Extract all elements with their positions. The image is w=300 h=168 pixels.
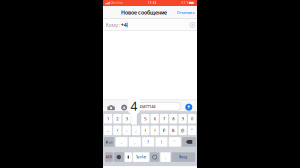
staticText: / [117,128,118,133]
staticText: 2 [116,116,118,121]
staticText: 63 % [181,1,188,5]
button[interactable]: 8 [169,114,177,123]
staticText: 0 [191,116,193,121]
button[interactable]: ₽ [160,125,168,135]
button[interactable]: Dictate [125,152,132,162]
button[interactable]: . [116,137,128,147]
staticText: 7 [163,116,165,121]
staticText: 6 [154,116,156,121]
staticText: 3 [126,116,128,121]
button[interactable]: Send [185,104,192,111]
staticText: ₽ [163,128,165,133]
button[interactable]: @ [178,125,187,135]
staticText: Кому: [105,21,119,29]
staticText: Ввод [179,155,187,159]
button[interactable]: Add contact [190,22,195,27]
button[interactable]: . [160,152,170,162]
button[interactable]: 1 [104,114,112,123]
staticText: ) [154,128,155,133]
button[interactable]: 3 [123,114,131,123]
staticText: #+= [106,139,113,144]
button[interactable]: ! [155,137,167,147]
staticText: ' [174,139,175,144]
button[interactable]: #+= [104,137,114,147]
staticText: +4 [121,21,127,29]
button[interactable]: & [169,125,177,135]
button[interactable]: 6 [151,114,159,123]
staticText: 13:26 [148,1,157,5]
button[interactable]: , [129,137,141,147]
staticText: " [191,128,193,133]
button[interactable]: ( [141,125,149,135]
button[interactable]: 2 [113,114,121,123]
button[interactable]: Apps [121,105,127,110]
staticText: АБВ [106,155,112,159]
staticText: @ [181,128,185,133]
button[interactable]: 4 [132,114,140,123]
button[interactable]: 7 [160,114,168,123]
staticText: 9 [182,116,184,121]
staticText: 8 [172,116,174,121]
button[interactable]: 9 [178,114,187,123]
staticText: Пробел [135,155,146,159]
staticText: 5 [144,116,146,121]
staticText: ( [145,128,146,133]
staticText: Beeline [111,1,123,5]
staticText: 4 [130,98,137,114]
staticText: . [121,139,122,144]
button[interactable]: ' [169,137,181,147]
button[interactable]: Take photo [107,105,115,110]
button[interactable]: АБВ [105,152,113,162]
button[interactable]: Отменить [174,7,197,18]
button[interactable]: : [123,125,131,135]
button[interactable]: " [188,125,196,135]
button[interactable]: Change keyboard [114,152,124,162]
staticText: Отменить [177,10,195,15]
staticText: ? [147,139,149,144]
button[interactable]: ? [142,137,154,147]
button[interactable]: Пробел [133,152,149,162]
staticText: ! [161,139,162,144]
staticText: : [126,128,127,133]
button[interactable]: ; [132,125,140,135]
button[interactable]: 5 [141,114,149,123]
button[interactable]: - [104,125,112,135]
staticText: 1 [107,116,109,121]
button[interactable]: Delete [182,137,196,147]
staticText: & [172,128,175,133]
staticText: . [165,154,166,160]
staticText: , [134,139,135,144]
button[interactable]: 0 [188,114,196,123]
staticText: Новое сообщение [121,9,167,16]
button[interactable]: ) [151,125,159,135]
button[interactable]: Emoji [150,152,159,162]
button[interactable]: Ввод [171,152,195,162]
button[interactable]: / [113,125,121,135]
staticText: 89743477144 [133,104,155,109]
